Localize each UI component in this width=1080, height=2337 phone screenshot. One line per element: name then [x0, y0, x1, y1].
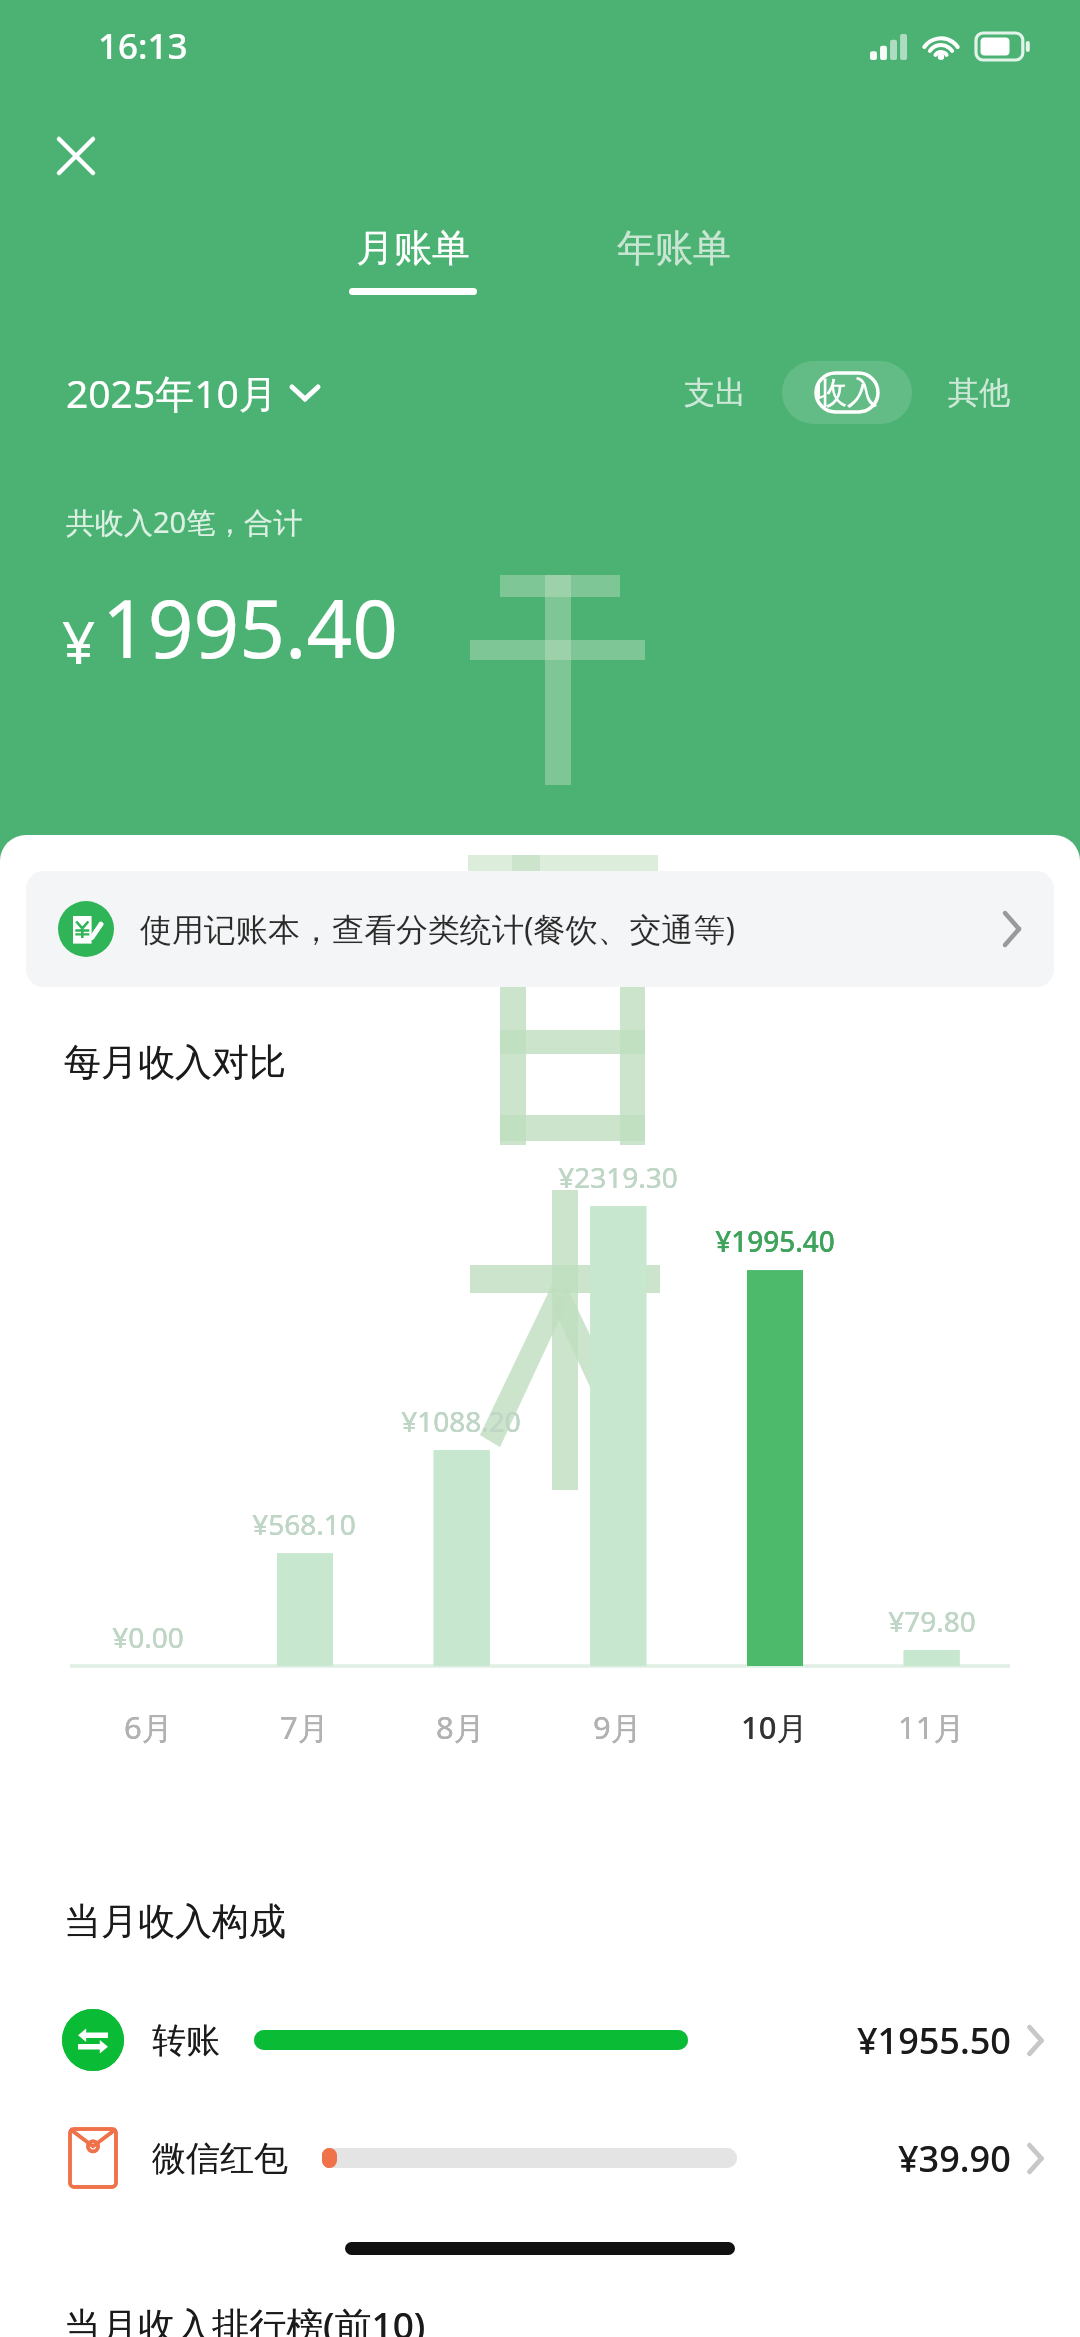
- staticText: ¥79.80: [888, 1602, 976, 1640]
- staticText: ¥1995.40: [715, 1222, 835, 1260]
- staticText: 当月收入构成: [64, 1898, 286, 1945]
- staticText: ¥39.90: [898, 2134, 1011, 2183]
- staticText: 微信红包: [152, 2137, 288, 2180]
- staticText: 当月收入构成: [64, 1898, 286, 1945]
- staticText: ¥1995.40: [715, 1222, 835, 1260]
- staticText: ¥: [62, 602, 96, 681]
- staticText: 当月收入排行榜(前10): [64, 2299, 426, 2337]
- staticText: ¥568.10: [252, 1505, 356, 1543]
- button[interactable]: 使用记账本，查看分类统计(餐饮、交通等): [26, 871, 1054, 987]
- staticText: ¥1955.50: [857, 2016, 1011, 2065]
- staticText: ¥2319.30: [558, 1158, 678, 1196]
- button[interactable]: 月账单: [339, 218, 487, 301]
- staticText: ¥1088.20: [401, 1402, 521, 1440]
- button[interactable]: 使用记账本，查看分类统计(餐饮、交通等): [26, 871, 1054, 987]
- staticText: 9月: [593, 1706, 642, 1748]
- button[interactable]: 收入: [782, 361, 912, 424]
- button[interactable]: 其他: [934, 361, 1024, 424]
- staticText: ¥2319.30: [558, 1158, 678, 1196]
- staticText: 转账: [152, 2019, 220, 2062]
- staticText: 6月: [124, 1706, 173, 1748]
- staticText: ¥79.80: [888, 1602, 976, 1640]
- staticText: ¥0.00: [112, 1618, 184, 1656]
- button[interactable]: 微信红包: [0, 2127, 1080, 2189]
- button[interactable]: 转账: [0, 2009, 1080, 2071]
- staticText: 1995.40: [102, 572, 398, 681]
- button[interactable]: 转账: [0, 2009, 1080, 2071]
- staticText: ¥568.10: [252, 1505, 356, 1543]
- staticText: ¥1088.20: [401, 1402, 521, 1440]
- staticText: 每月收入对比: [64, 1039, 286, 1086]
- staticText: 8月: [436, 1706, 485, 1748]
- staticText: 使用记账本，查看分类统计(餐饮、交通等): [140, 907, 736, 951]
- staticText: 当月收入排行榜(前10): [64, 2299, 426, 2337]
- button[interactable]: 微信红包: [0, 2127, 1080, 2189]
- staticText: 转账: [152, 2019, 220, 2062]
- staticText: 8月: [436, 1706, 485, 1748]
- staticText: ¥39.90: [898, 2134, 1011, 2183]
- staticText: 11月: [898, 1706, 965, 1748]
- button[interactable]: 2025年10月: [66, 366, 318, 419]
- staticText: ¥1955.50: [857, 2016, 1011, 2065]
- staticText: 7月: [280, 1706, 329, 1748]
- staticText: 10月: [741, 1706, 808, 1748]
- staticText: 微信红包: [152, 2137, 288, 2180]
- staticText: 共收入20笔，合计: [66, 502, 303, 542]
- staticText: 16:13: [98, 22, 188, 70]
- staticText: 11月: [898, 1706, 965, 1748]
- button[interactable]: 支出: [670, 361, 760, 424]
- staticText: 10月: [741, 1706, 808, 1748]
- staticText: 其他: [948, 373, 1010, 412]
- staticText: 年账单: [617, 224, 731, 272]
- staticText: 7月: [280, 1706, 329, 1748]
- staticText: 支出: [684, 373, 746, 412]
- button[interactable]: Close: [36, 116, 116, 196]
- staticText: 6月: [124, 1706, 173, 1748]
- staticText: 使用记账本，查看分类统计(餐饮、交通等): [140, 907, 736, 951]
- staticText: 月账单: [356, 224, 470, 272]
- staticText: 收入: [816, 373, 878, 412]
- staticText: 9月: [593, 1706, 642, 1748]
- button[interactable]: 年账单: [607, 218, 741, 301]
- staticText: 2025年10月: [66, 366, 278, 419]
- staticText: ¥0.00: [112, 1618, 184, 1656]
- staticText: 每月收入对比: [64, 1039, 286, 1086]
